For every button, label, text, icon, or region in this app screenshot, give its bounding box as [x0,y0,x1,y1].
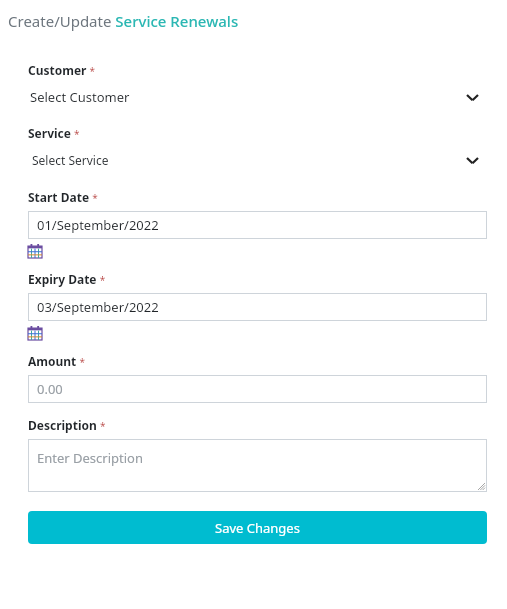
staticText: Amount * [28,353,85,369]
staticText: 01/September/2022 [37,216,159,234]
button[interactable]: Open calendar [28,244,42,258]
staticText: Enter Description [37,449,143,467]
staticText: Customer * [28,62,96,78]
staticText: Save Changes [215,519,300,537]
staticText: 0.00 [37,380,63,398]
staticText: Expiry Date * [28,271,106,287]
staticText: Service * [28,125,80,141]
button[interactable]: 0.00 [28,375,487,403]
button[interactable]: Open calendar [28,326,42,340]
staticText: Create/Update Service Renewals [8,11,239,31]
staticText: Select Service [32,152,109,168]
staticText: Description * [28,417,106,433]
button[interactable]: Select Customer [28,84,487,110]
button[interactable]: 01/September/2022 [28,211,487,239]
button[interactable]: Save Changes [28,511,487,544]
button[interactable]: 03/September/2022 [28,293,487,321]
staticText: 03/September/2022 [37,298,159,316]
button[interactable]: Select Service [28,147,487,173]
button[interactable]: Enter Description [28,439,487,492]
staticText: Select Customer [30,88,130,106]
staticText: Start Date * [28,189,98,205]
